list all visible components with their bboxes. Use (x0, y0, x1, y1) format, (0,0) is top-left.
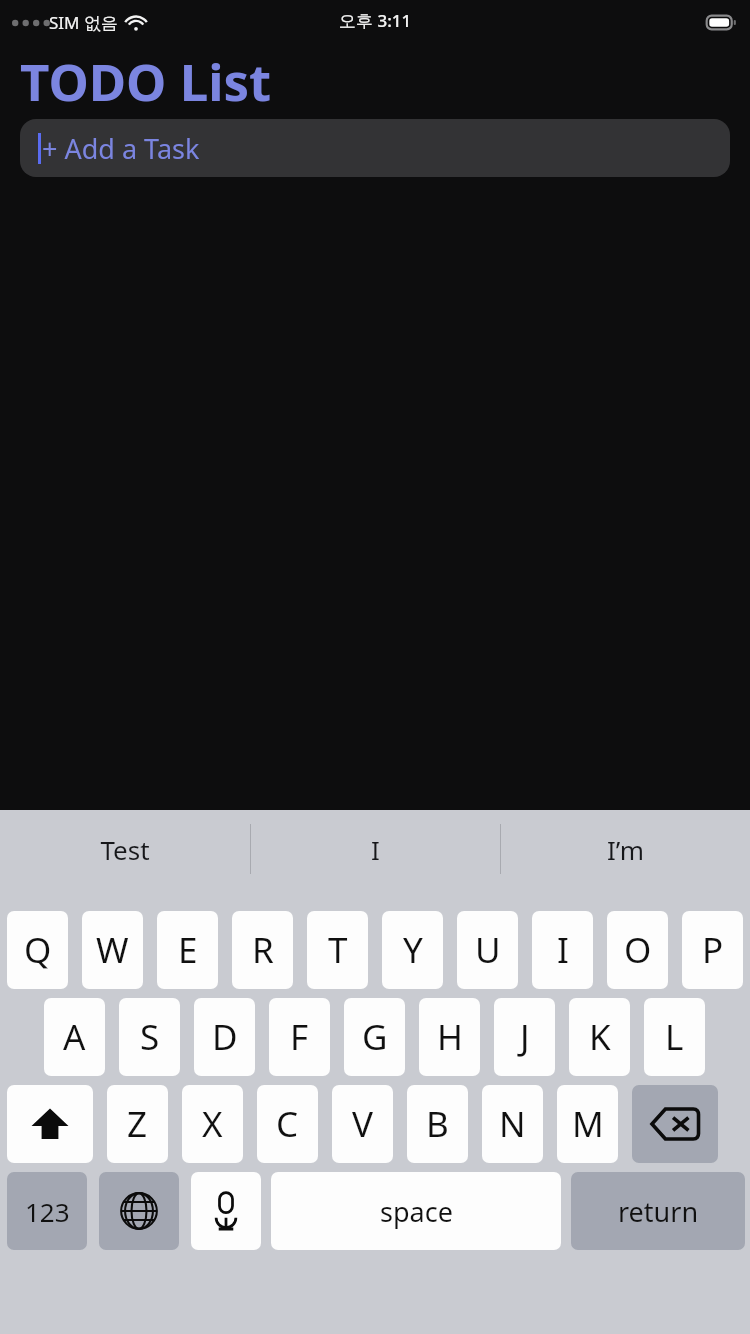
staticText: + Add a Task (42, 130, 200, 167)
button[interactable]: D (194, 998, 255, 1076)
staticText: H (437, 1013, 463, 1061)
staticText: B (426, 1100, 449, 1148)
staticText: P (702, 926, 724, 974)
button[interactable]: Z (107, 1085, 168, 1163)
button[interactable]: T (307, 911, 368, 989)
staticText: R (252, 926, 274, 974)
staticText: E (178, 926, 198, 974)
staticText: I’m (607, 832, 644, 867)
button[interactable]: R (232, 911, 293, 989)
button[interactable]: N (482, 1085, 543, 1163)
button[interactable]: I (251, 810, 500, 888)
staticText: SIM 없음 (49, 11, 118, 34)
button[interactable]: A (44, 998, 105, 1076)
button[interactable]: O (607, 911, 668, 989)
staticText: I (557, 926, 569, 974)
staticText: 123 (25, 1194, 70, 1229)
button[interactable]: Test (0, 810, 250, 888)
button[interactable]: Switch keyboard (99, 1172, 179, 1250)
button[interactable]: G (344, 998, 405, 1076)
button[interactable]: J (494, 998, 555, 1076)
button[interactable]: Dictation (191, 1172, 261, 1250)
button[interactable]: K (569, 998, 630, 1076)
button[interactable]: L (644, 998, 705, 1076)
staticText: N (499, 1100, 526, 1148)
button[interactable]: V (332, 1085, 393, 1163)
button[interactable]: S (119, 998, 180, 1076)
button[interactable]: W (82, 911, 143, 989)
staticText: O (624, 926, 652, 974)
button[interactable]: P (682, 911, 743, 989)
staticText: TODO List (20, 46, 272, 115)
button[interactable]: U (457, 911, 518, 989)
staticText: X (202, 1100, 223, 1148)
button[interactable]: M (557, 1085, 618, 1163)
staticText: F (290, 1013, 309, 1061)
button[interactable]: Q (7, 911, 68, 989)
button[interactable]: 123 (7, 1172, 87, 1250)
staticText: W (96, 926, 129, 974)
button[interactable]: Y (382, 911, 443, 989)
staticText: Test (100, 832, 150, 867)
button[interactable]: F (269, 998, 330, 1076)
button[interactable]: I’m (501, 810, 750, 888)
staticText: Z (127, 1100, 148, 1148)
button[interactable]: Backspace (632, 1085, 718, 1163)
staticText: return (618, 1193, 699, 1230)
button[interactable]: return (571, 1172, 745, 1250)
button[interactable]: Shift (7, 1085, 93, 1163)
staticText: T (328, 926, 348, 974)
button[interactable]: C (257, 1085, 318, 1163)
button[interactable]: + Add a Task (20, 119, 730, 177)
staticText: J (520, 1013, 530, 1061)
staticText: I (371, 832, 380, 867)
staticText: 오후 3:11 (339, 9, 412, 32)
staticText: M (572, 1100, 604, 1148)
staticText: D (212, 1013, 238, 1061)
staticText: Q (24, 926, 52, 974)
staticText: V (352, 1100, 374, 1148)
button[interactable]: I (532, 911, 593, 989)
staticText: L (665, 1013, 684, 1061)
button[interactable]: B (407, 1085, 468, 1163)
button[interactable]: X (182, 1085, 243, 1163)
staticText: C (276, 1100, 299, 1148)
staticText: U (475, 926, 501, 974)
button[interactable]: H (419, 998, 480, 1076)
button[interactable]: space (271, 1172, 561, 1250)
staticText: A (63, 1013, 86, 1061)
staticText: Y (403, 926, 423, 974)
button[interactable]: E (157, 911, 218, 989)
staticText: G (362, 1013, 388, 1061)
staticText: space (380, 1193, 453, 1230)
staticText: K (589, 1013, 611, 1061)
staticText: S (140, 1013, 160, 1061)
